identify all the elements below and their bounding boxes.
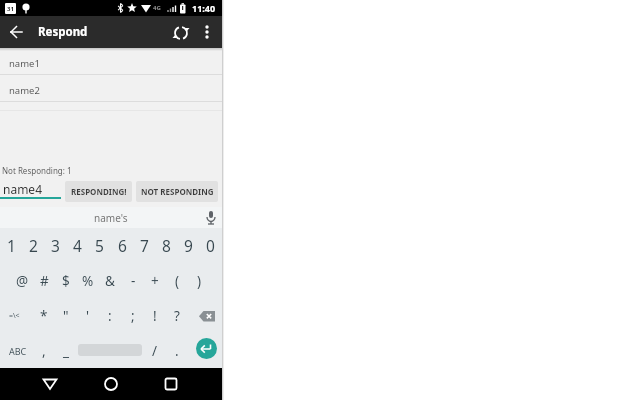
staticText: 9 (184, 235, 193, 256)
button[interactable]: $ (55, 263, 77, 298)
staticText: ABC (9, 345, 27, 357)
button[interactable]: . (166, 333, 188, 368)
button[interactable]: name's (61, 207, 161, 228)
staticText: , (42, 342, 46, 360)
staticText: name's (94, 211, 128, 225)
button[interactable] (8, 24, 26, 40)
button[interactable] (163, 376, 179, 392)
button[interactable]: 1 (0, 228, 22, 263)
staticText: " (63, 307, 69, 325)
button[interactable]: 3 (44, 228, 66, 263)
button[interactable]: name2 (0, 75, 222, 101)
button[interactable]: 7 (133, 228, 155, 263)
button[interactable]: _ (55, 333, 77, 368)
staticText: 6 (118, 235, 127, 256)
button[interactable]: 2 (22, 228, 44, 263)
staticText: % (82, 272, 94, 290)
staticText: NOT RESPONDING (141, 186, 214, 197)
staticText: ' (86, 307, 90, 325)
button[interactable]: / (144, 333, 166, 368)
button[interactable]: 6 (111, 228, 133, 263)
button[interactable] (200, 24, 214, 40)
staticText: $ (62, 272, 70, 290)
staticText: 11:40 (192, 2, 216, 14)
button[interactable]: RESPONDING! (65, 181, 132, 202)
staticText: RESPONDING! (71, 186, 127, 197)
staticText: 31 (7, 5, 14, 13)
button[interactable] (42, 376, 58, 392)
staticText: 2 (29, 235, 38, 256)
button[interactable]: ) (188, 263, 210, 298)
button[interactable]: & (99, 263, 121, 298)
button[interactable] (194, 304, 216, 326)
staticText: / (152, 342, 158, 360)
button[interactable]: NOT RESPONDING (136, 181, 218, 202)
staticText: . (175, 342, 179, 360)
staticText: # (40, 272, 49, 290)
button[interactable]: " (55, 298, 77, 333)
staticText: _ (63, 342, 69, 360)
staticText: : (108, 307, 112, 325)
staticText: * (40, 307, 48, 325)
staticText: ? (174, 307, 180, 325)
staticText: ) (197, 272, 202, 290)
button[interactable]: ' (77, 298, 99, 333)
button[interactable]: name1 (0, 48, 222, 74)
button[interactable]: , (33, 333, 55, 368)
staticText: @ (16, 272, 29, 290)
staticText: name1 (9, 57, 40, 70)
staticText: - (131, 272, 136, 290)
button[interactable]: + (144, 263, 166, 298)
button[interactable]: ? (166, 298, 188, 333)
staticText: 4G (153, 4, 161, 12)
staticText: ; (131, 307, 135, 325)
button[interactable]: # (33, 263, 55, 298)
button[interactable]: 4 (66, 228, 88, 263)
button[interactable]: ( (166, 263, 188, 298)
staticText: 4 (73, 235, 82, 256)
button[interactable]: @ (11, 263, 33, 298)
staticText: name4 (3, 181, 43, 197)
staticText: 7 (140, 235, 149, 256)
staticText: ! (153, 307, 157, 325)
staticText: name2 (9, 84, 40, 97)
button[interactable] (204, 210, 218, 226)
staticText: & (105, 272, 115, 290)
button[interactable]: =\< (2, 298, 26, 333)
button[interactable] (173, 25, 189, 41)
button[interactable]: - (122, 263, 144, 298)
button[interactable]: 9 (177, 228, 199, 263)
button[interactable]: 8 (155, 228, 177, 263)
button[interactable]: ; (122, 298, 144, 333)
button[interactable]: 0 (199, 228, 221, 263)
button[interactable]: 5 (88, 228, 110, 263)
button[interactable]: ! (144, 298, 166, 333)
staticText: ( (175, 272, 180, 290)
button[interactable]: % (77, 263, 99, 298)
button[interactable] (196, 338, 217, 359)
button[interactable]: : (99, 298, 121, 333)
button[interactable]: ABC (6, 333, 30, 368)
staticText: Respond (38, 24, 88, 40)
staticText: 3 (51, 235, 60, 256)
staticText: 5 (95, 235, 104, 256)
staticText: 1 (7, 235, 16, 256)
staticText: 0 (206, 235, 215, 256)
staticText: + (151, 272, 159, 290)
staticText: =\< (9, 311, 20, 321)
staticText: Not Responding: 1 (2, 165, 72, 176)
button[interactable] (103, 376, 119, 392)
button[interactable]: * (33, 298, 55, 333)
staticText: 8 (162, 235, 171, 256)
